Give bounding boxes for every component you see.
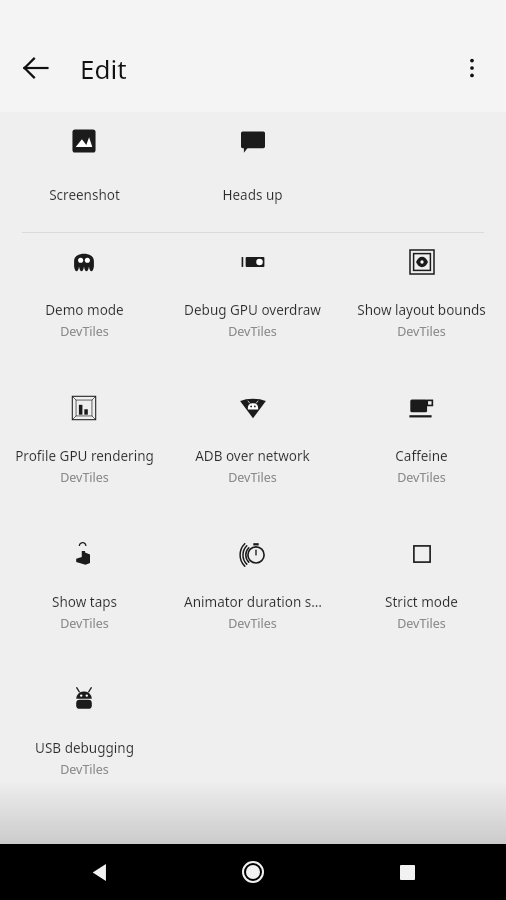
- button[interactable]: Animator duration s…: [168, 525, 337, 632]
- button[interactable]: Caffeine: [337, 379, 506, 486]
- staticText: Profile GPU rendering: [15, 447, 154, 465]
- button[interactable]: Strict mode: [337, 525, 506, 632]
- staticText: Debug GPU overdraw: [184, 301, 321, 319]
- staticText: DevTiles: [397, 615, 446, 632]
- button[interactable]: Recent apps: [382, 847, 432, 897]
- staticText: DevTiles: [60, 469, 109, 486]
- button[interactable]: ADB over network: [168, 379, 337, 486]
- button[interactable]: Back: [74, 847, 124, 897]
- button[interactable]: Back: [8, 40, 64, 96]
- staticText: Edit: [80, 51, 127, 86]
- button[interactable]: Show taps: [0, 525, 168, 632]
- button[interactable]: Profile GPU rendering: [0, 379, 168, 486]
- button[interactable]: Home: [228, 847, 278, 897]
- staticText: DevTiles: [397, 323, 446, 340]
- staticText: USB debugging: [35, 739, 134, 757]
- staticText: DevTiles: [228, 469, 277, 486]
- button[interactable]: Heads up: [168, 112, 337, 204]
- staticText: Caffeine: [395, 447, 448, 465]
- staticText: Heads up: [222, 186, 283, 204]
- staticText: DevTiles: [228, 323, 277, 340]
- staticText: Demo mode: [45, 301, 124, 319]
- staticText: DevTiles: [397, 469, 446, 486]
- staticText: Screenshot: [49, 186, 120, 204]
- staticText: Animator duration s…: [184, 593, 322, 611]
- staticText: DevTiles: [60, 615, 109, 632]
- button[interactable]: Debug GPU overdraw: [168, 233, 337, 340]
- button[interactable]: Screenshot: [0, 112, 168, 204]
- button[interactable]: Demo mode: [0, 233, 168, 340]
- staticText: ADB over network: [195, 447, 310, 465]
- staticText: Show layout bounds: [357, 301, 486, 319]
- staticText: DevTiles: [60, 761, 109, 778]
- staticText: DevTiles: [228, 615, 277, 632]
- button[interactable]: More options: [446, 42, 498, 94]
- staticText: Strict mode: [385, 593, 458, 611]
- staticText: Show taps: [52, 593, 117, 611]
- button[interactable]: USB debugging: [0, 671, 168, 778]
- button[interactable]: Show layout bounds: [337, 233, 506, 340]
- staticText: DevTiles: [60, 323, 109, 340]
